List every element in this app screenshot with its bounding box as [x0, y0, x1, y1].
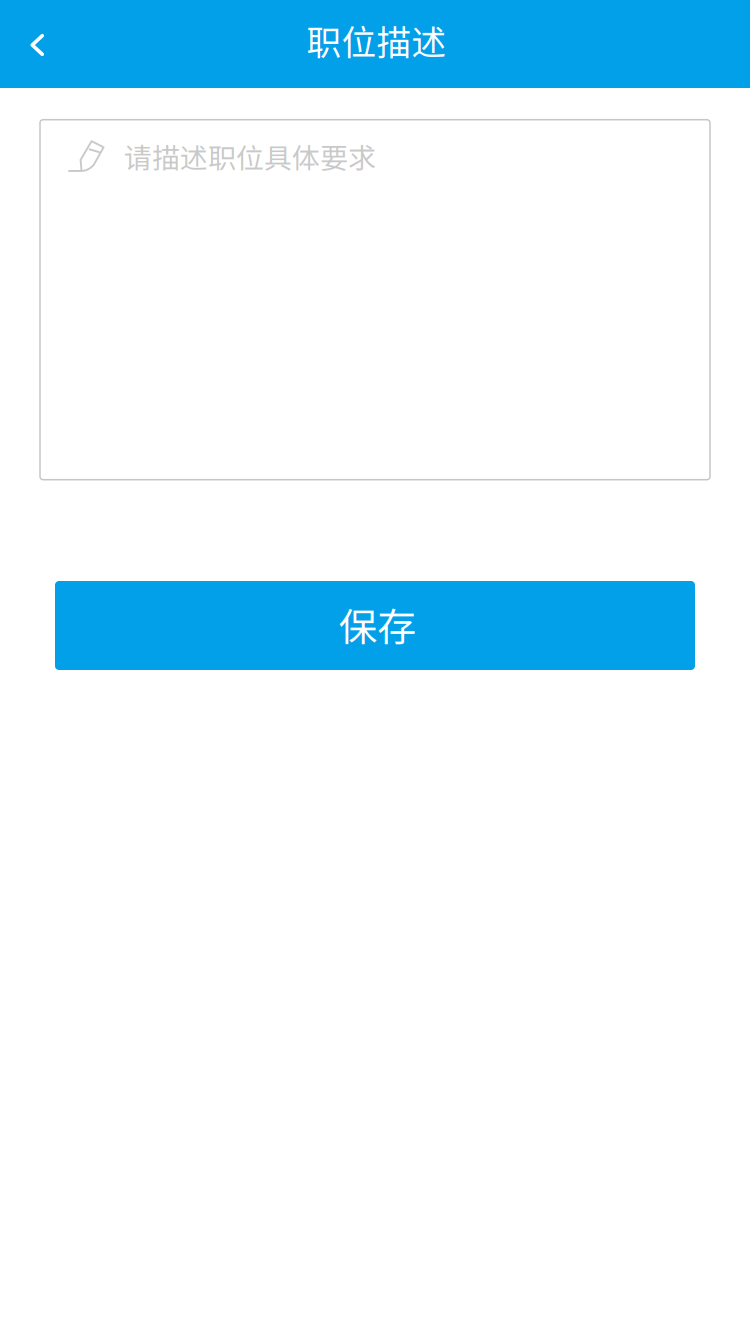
button[interactable]: Back — [0, 0, 62, 88]
staticText: 职位描述 — [306, 15, 446, 65]
staticText: 保存 — [338, 596, 416, 652]
button[interactable]: 保存 — [55, 581, 695, 670]
button[interactable]: 请描述职位具体要求 — [40, 120, 710, 480]
staticText: 请描述职位具体要求 — [124, 136, 376, 176]
